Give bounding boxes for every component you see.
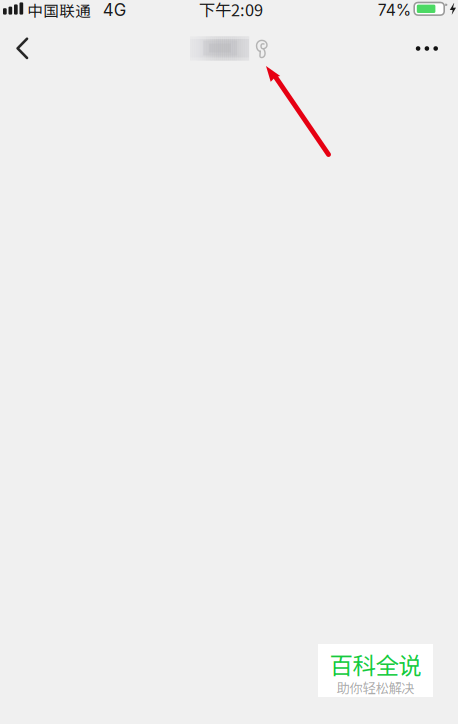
staticText: 下午2:09 [199, 0, 263, 21]
button[interactable]: More [402, 27, 452, 69]
button[interactable]: Back [0, 27, 48, 69]
staticText: 百科全说 [329, 647, 421, 681]
staticText: 助你轻松解决 [336, 678, 414, 697]
staticText: 4G [103, 0, 127, 20]
staticText: 74% [378, 0, 411, 19]
staticText: 中国联通 [27, 0, 91, 21]
button[interactable]: Chat title, muted [184, 27, 274, 70]
